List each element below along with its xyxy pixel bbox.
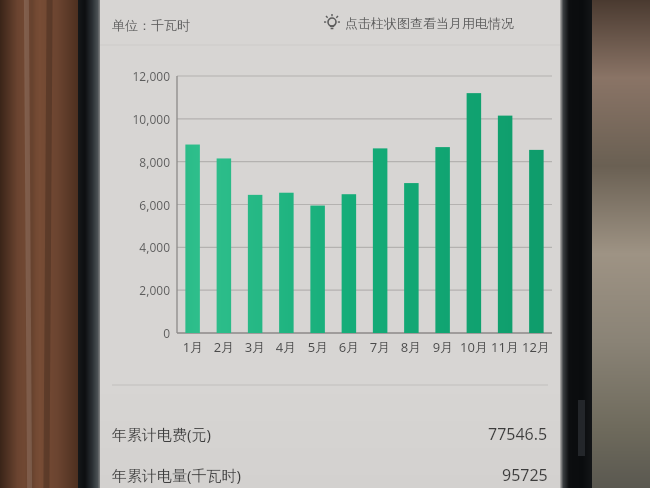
staticText: 95725 xyxy=(502,464,548,486)
button[interactable]: 年累计电费(元) xyxy=(100,417,560,451)
staticText: 年累计电费(元) xyxy=(112,424,212,444)
staticText: 1月 xyxy=(176,338,210,356)
staticText: 3月 xyxy=(238,338,272,356)
staticText: 2,000 xyxy=(100,282,170,298)
staticText: 0 xyxy=(100,325,170,341)
other: 提示 xyxy=(324,15,340,31)
staticText: 点击柱状图查看当月用电情况 xyxy=(345,15,514,31)
staticText: 5月 xyxy=(301,338,335,356)
staticText: 9月 xyxy=(426,338,460,356)
staticText: 10,000 xyxy=(100,111,170,127)
button[interactable]: 提示 xyxy=(322,12,516,34)
staticText: 6月 xyxy=(332,338,366,356)
staticText: 12月 xyxy=(519,338,553,356)
staticText: 8,000 xyxy=(100,154,170,170)
staticText: 单位：千瓦时 xyxy=(112,17,190,33)
button[interactable]: 年累计电量(千瓦时) xyxy=(100,458,560,488)
button[interactable]: 月度用电量柱状图 xyxy=(100,0,560,488)
staticText: 11月 xyxy=(488,338,522,356)
staticText: 8月 xyxy=(394,338,428,356)
staticText: 12,000 xyxy=(100,68,170,84)
staticText: 77546.5 xyxy=(488,423,548,445)
staticText: 4月 xyxy=(269,338,303,356)
staticText: 6,000 xyxy=(100,197,170,213)
staticText: 10月 xyxy=(457,338,491,356)
staticText: 年累计电量(千瓦时) xyxy=(112,465,242,485)
staticText: 2月 xyxy=(207,338,241,356)
staticText: 7月 xyxy=(363,338,397,356)
staticText: 4,000 xyxy=(100,239,170,255)
